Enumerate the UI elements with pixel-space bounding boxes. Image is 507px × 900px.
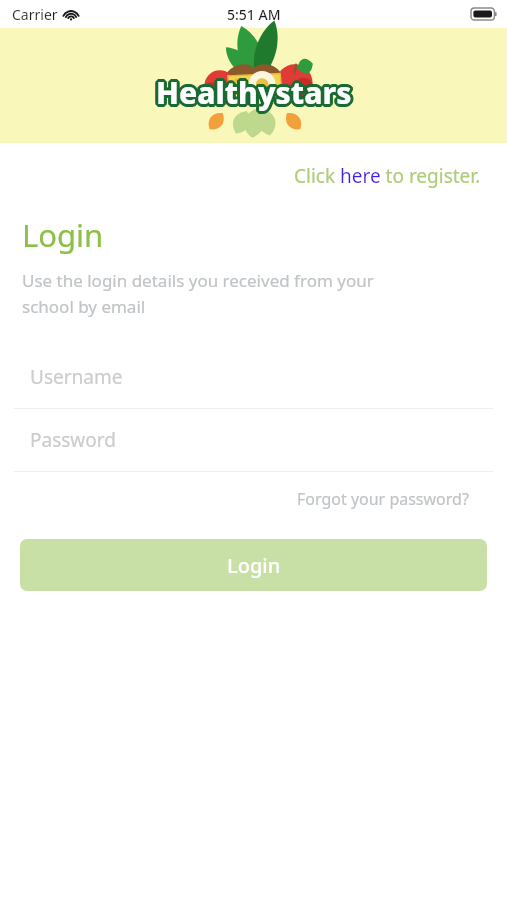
staticText: Healthystars bbox=[153, 71, 349, 112]
staticText: Password bbox=[30, 427, 116, 453]
staticText: Healthystars bbox=[158, 73, 354, 114]
staticText: Login bbox=[227, 552, 281, 579]
button[interactable]: Forgot your password? bbox=[295, 485, 471, 513]
other: Healthystars logo bbox=[164, 33, 344, 138]
staticText: Healthystars bbox=[157, 75, 353, 116]
staticText: Healthystars bbox=[157, 69, 353, 110]
staticText: Healthystars bbox=[154, 71, 350, 112]
staticText: Healthystars bbox=[154, 73, 350, 114]
staticText: Healthystars bbox=[158, 70, 354, 111]
staticText: 5:51 AM bbox=[227, 5, 281, 24]
staticText: Healthystars bbox=[159, 72, 355, 113]
staticText: Healthystars bbox=[158, 74, 354, 115]
staticText: Carrier bbox=[12, 5, 58, 24]
staticText: Login bbox=[22, 214, 104, 256]
staticText: Healthystars bbox=[156, 75, 352, 116]
staticText: Healthystars bbox=[157, 70, 353, 111]
staticText: Healthystars bbox=[159, 71, 355, 112]
staticText: Healthystars bbox=[157, 74, 353, 115]
staticText: Forgot your password? bbox=[297, 488, 469, 510]
staticText: Healthystars bbox=[156, 69, 352, 110]
staticText: Healthystars bbox=[154, 74, 350, 115]
button[interactable]: Click here to register. bbox=[292, 160, 483, 192]
staticText: Healthystars bbox=[155, 74, 351, 115]
staticText: Healthystars bbox=[154, 70, 350, 111]
staticText: Username bbox=[30, 364, 123, 390]
staticText: Healthystars bbox=[159, 73, 355, 114]
staticText: Healthystars bbox=[155, 75, 351, 116]
staticText: Healthystars bbox=[153, 73, 349, 114]
staticText: Healthystars bbox=[155, 69, 351, 110]
staticText: Use the login details you received from … bbox=[22, 269, 374, 318]
staticText: Healthystars bbox=[158, 71, 354, 112]
staticText: Click here to register. bbox=[294, 163, 481, 189]
button[interactable]: Login bbox=[20, 539, 487, 591]
staticText: Healthystars bbox=[153, 72, 349, 113]
button[interactable]: Username bbox=[0, 346, 507, 409]
staticText: Healthystars bbox=[155, 70, 351, 111]
staticText: Healthystars bbox=[156, 72, 352, 113]
button[interactable]: Password bbox=[0, 409, 507, 472]
